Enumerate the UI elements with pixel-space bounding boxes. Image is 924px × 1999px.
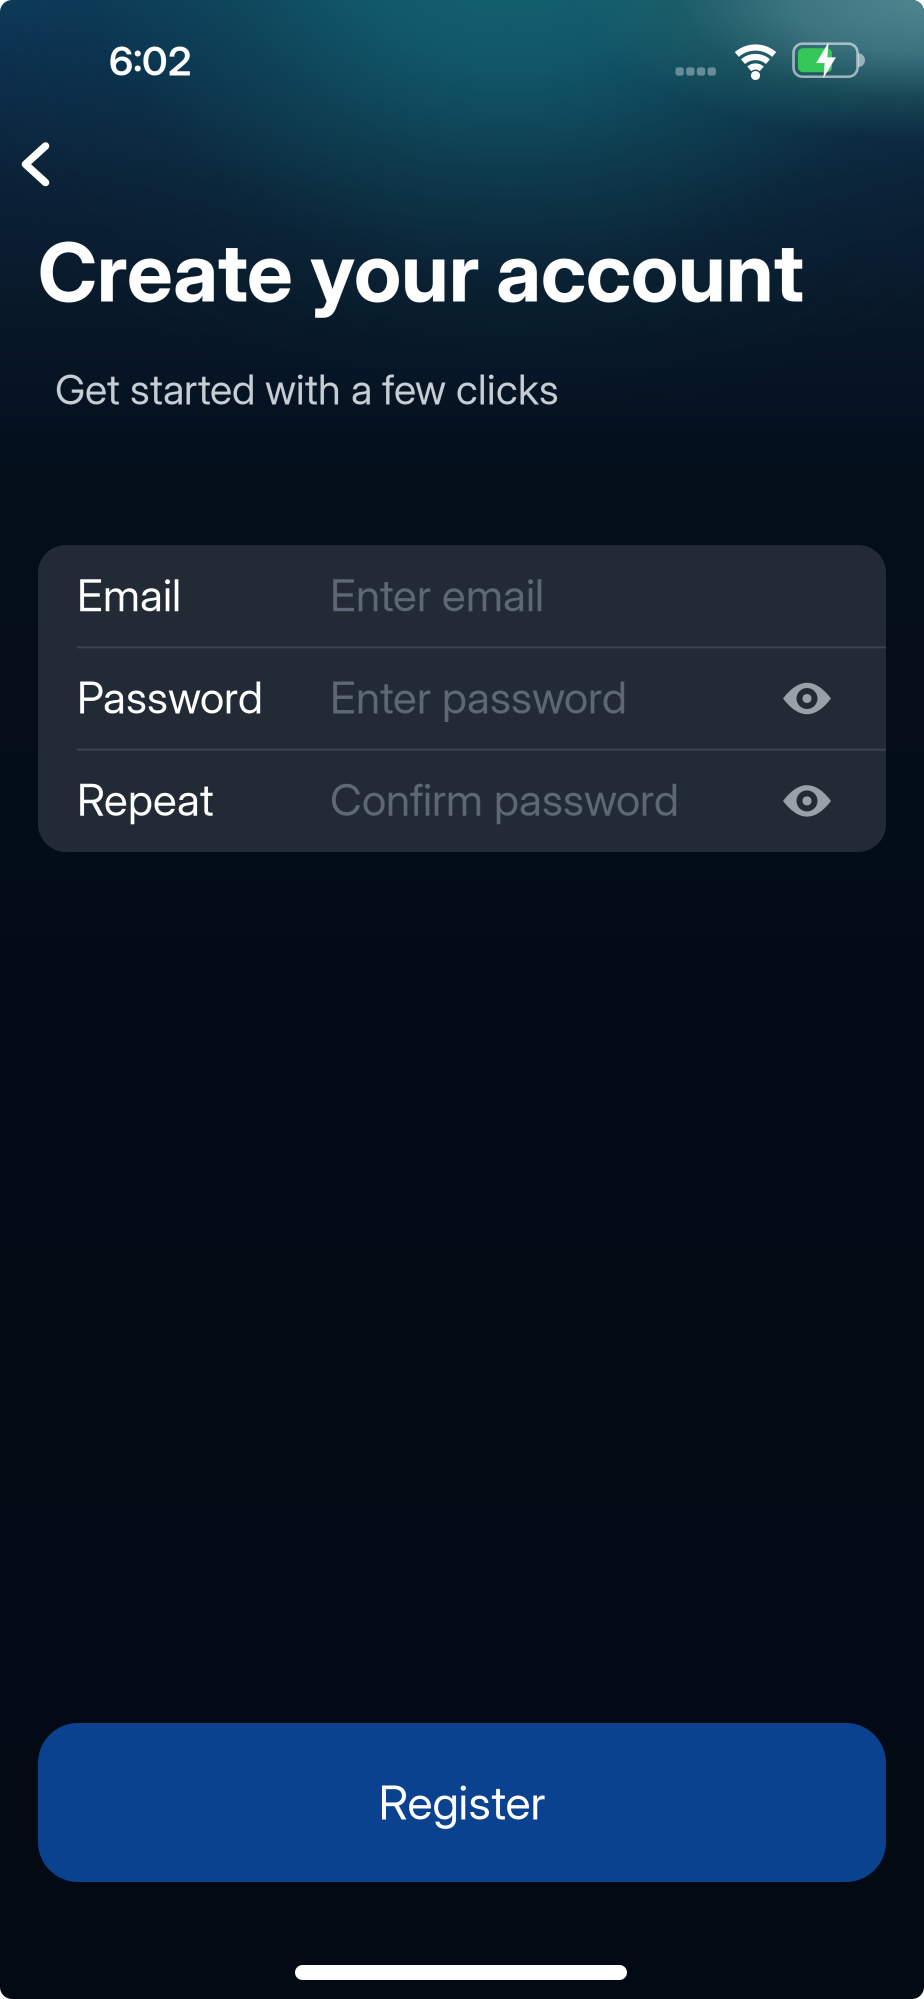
button[interactable]: Back bbox=[0, 132, 85, 196]
staticText: Enter email bbox=[330, 569, 544, 621]
staticText: Get started with a few clicks bbox=[55, 365, 559, 414]
staticText: Email bbox=[77, 569, 181, 621]
button[interactable]: Email bbox=[38, 545, 778, 647]
staticText: Enter password bbox=[330, 671, 627, 723]
staticText: Confirm password bbox=[330, 774, 679, 826]
button[interactable]: Register bbox=[38, 1723, 886, 1882]
staticText: Repeat bbox=[77, 774, 214, 826]
staticText: 6:02 bbox=[109, 37, 191, 85]
button[interactable]: Password bbox=[38, 647, 778, 750]
button[interactable]: Show repeat bbox=[779, 779, 835, 823]
staticText: Register bbox=[378, 1775, 545, 1830]
button[interactable]: Show password bbox=[779, 676, 835, 720]
button[interactable]: Repeat bbox=[38, 750, 778, 852]
staticText: Create your account bbox=[38, 224, 804, 320]
staticText: Password bbox=[77, 671, 263, 723]
